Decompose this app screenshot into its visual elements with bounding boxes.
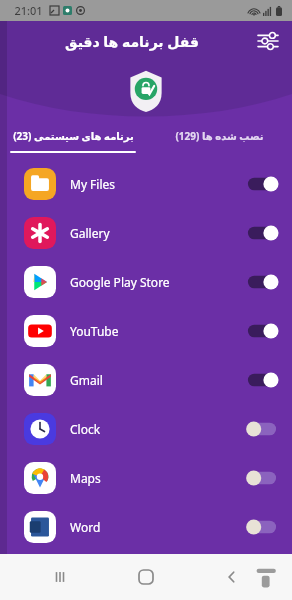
button[interactable]: نصب شده ها (129) (146, 121, 292, 151)
button[interactable]: Clock (0, 404, 292, 453)
button[interactable]: Word (0, 502, 292, 551)
button[interactable]: برنامه های سیستمی (23) (0, 121, 146, 151)
button[interactable]: Settings (250, 23, 286, 59)
button[interactable] (246, 322, 278, 340)
staticText: My Files (70, 176, 246, 192)
button[interactable]: Gallery (0, 208, 292, 257)
button[interactable] (246, 469, 278, 487)
button[interactable] (246, 371, 278, 389)
staticText: Word (70, 519, 246, 535)
staticText: YouTube (70, 323, 246, 339)
staticText: Google Play Store (70, 274, 246, 290)
staticText: قفل برنامه ها دقیق (65, 32, 199, 51)
staticText: Clock (70, 421, 246, 437)
button[interactable]: Recents (40, 557, 80, 597)
button[interactable] (246, 175, 278, 193)
button[interactable]: YouTube (0, 306, 292, 355)
staticText: برنامه های سیستمی (23) (13, 129, 134, 143)
staticText: Gallery (70, 225, 246, 241)
staticText: 21:01 (14, 3, 43, 18)
button[interactable]: Back (212, 557, 252, 597)
button[interactable]: Maps (0, 453, 292, 502)
staticText: Gmail (70, 372, 246, 388)
button[interactable]: Home (126, 557, 166, 597)
button[interactable]: Gmail (0, 355, 292, 404)
button[interactable] (246, 518, 278, 536)
button[interactable]: Google Play Store (0, 257, 292, 306)
button[interactable] (246, 224, 278, 242)
staticText: Maps (70, 470, 246, 486)
button[interactable] (246, 273, 278, 291)
staticText: نصب شده ها (129) (175, 129, 264, 143)
button[interactable] (246, 420, 278, 438)
button[interactable]: My Files (0, 159, 292, 208)
